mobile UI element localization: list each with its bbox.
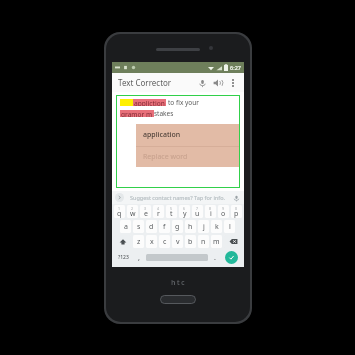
- button[interactable]: Speak: [210, 75, 226, 91]
- button[interactable]: 3: [140, 205, 151, 218]
- button[interactable]: 0: [231, 205, 242, 218]
- staticText: l: [229, 222, 231, 232]
- button[interactable]: 6: [179, 205, 190, 218]
- button[interactable]: Shift: [114, 235, 131, 248]
- staticText: k: [215, 222, 219, 232]
- staticText: f: [163, 222, 166, 232]
- staticText: stakes: [154, 109, 174, 118]
- staticText: m: [213, 237, 220, 247]
- staticText: 0: [235, 206, 238, 211]
- button[interactable]: c: [159, 235, 170, 248]
- button[interactable]: a: [120, 220, 131, 233]
- staticText: h: [188, 222, 193, 232]
- button[interactable]: l: [224, 220, 235, 233]
- staticText: r: [157, 209, 160, 218]
- staticText: Replace word: [143, 152, 188, 162]
- staticText: w: [130, 209, 136, 218]
- staticText: .: [214, 253, 216, 263]
- button[interactable]: 5: [166, 205, 177, 218]
- button[interactable]: d: [146, 220, 157, 233]
- staticText: g: [175, 222, 180, 232]
- button[interactable]: f: [159, 220, 170, 233]
- staticText: v: [176, 237, 180, 247]
- staticText: 8: [209, 206, 212, 211]
- staticText: to fix your: [168, 98, 199, 107]
- button[interactable]: 7: [192, 205, 203, 218]
- staticText: i: [210, 209, 212, 218]
- staticText: c: [163, 237, 167, 247]
- button[interactable]: h: [185, 220, 196, 233]
- button[interactable]: g: [172, 220, 183, 233]
- staticText: 1: [118, 206, 121, 211]
- button[interactable]: 4: [153, 205, 164, 218]
- staticText: Suggest contact names? Tap for info.: [130, 194, 225, 201]
- staticText: a: [124, 222, 128, 232]
- staticText: application: [143, 130, 181, 140]
- button[interactable]: Done: [225, 251, 238, 264]
- button[interactable]: Replace word: [136, 147, 240, 167]
- button[interactable]: Voice typing: [231, 193, 241, 203]
- staticText: htc: [171, 278, 186, 288]
- button[interactable]: Comma: [134, 250, 144, 265]
- staticText: 6:27: [230, 64, 241, 71]
- staticText: gramor m: [121, 110, 153, 117]
- staticText: d: [149, 222, 154, 232]
- staticText: 4: [157, 206, 160, 211]
- button[interactable]: x: [146, 235, 157, 248]
- staticText: u: [195, 209, 200, 218]
- staticText: 5: [170, 206, 173, 211]
- staticText: ,: [138, 253, 140, 263]
- staticText: s: [137, 222, 141, 232]
- staticText: 6: [183, 206, 186, 211]
- staticText: n: [201, 237, 206, 247]
- staticText: q: [117, 209, 122, 218]
- button[interactable]: 9: [218, 205, 229, 218]
- button[interactable]: v: [172, 235, 183, 248]
- button[interactable]: m: [211, 235, 222, 248]
- button[interactable]: 2: [127, 205, 138, 218]
- staticText: b: [188, 237, 193, 247]
- button[interactable]: Voice input: [194, 75, 210, 91]
- staticText: z: [137, 237, 141, 247]
- button[interactable]: Backspace: [224, 235, 242, 248]
- staticText: 2: [131, 206, 134, 211]
- staticText: x: [150, 237, 154, 247]
- button[interactable]: 8: [205, 205, 216, 218]
- staticText: t: [170, 209, 173, 218]
- button[interactable]: s: [133, 220, 144, 233]
- button[interactable]: z: [133, 235, 144, 248]
- button[interactable]: 1: [114, 205, 125, 218]
- button[interactable]: b: [185, 235, 196, 248]
- staticText: y: [183, 209, 187, 218]
- staticText: ?123: [118, 254, 129, 261]
- staticText: p: [234, 209, 239, 218]
- staticText: 7: [196, 206, 199, 211]
- button[interactable]: j: [198, 220, 209, 233]
- staticText: 9: [222, 206, 225, 211]
- staticText: j: [203, 222, 205, 232]
- button[interactable]: k: [211, 220, 222, 233]
- button[interactable]: n: [198, 235, 209, 248]
- button[interactable]: Period: [210, 250, 220, 265]
- staticText: appliction: [134, 99, 165, 106]
- button[interactable]: ?123: [113, 250, 134, 265]
- staticText: e: [144, 209, 148, 218]
- button[interactable]: application: [136, 124, 240, 146]
- staticText: o: [221, 209, 226, 218]
- button[interactable]: Expand suggestions: [115, 193, 124, 202]
- staticText: 3: [144, 206, 147, 211]
- button[interactable]: More options: [226, 76, 240, 90]
- staticText: Text Corrector: [118, 77, 172, 88]
